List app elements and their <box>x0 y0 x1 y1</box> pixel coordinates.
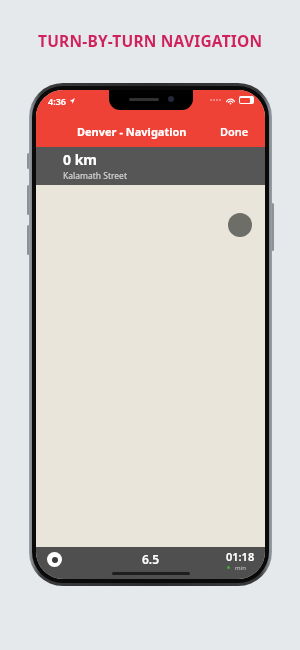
button[interactable]: Done <box>216 122 253 141</box>
staticText: Denver - Navigation <box>77 124 187 139</box>
button[interactable]: 0 km <box>36 147 265 185</box>
button[interactable]: Current location <box>228 213 252 237</box>
staticText: 0 km <box>63 150 97 169</box>
staticText: Done <box>220 124 249 139</box>
staticText: TURN-BY-TURN NAVIGATION <box>38 30 263 51</box>
staticText: Kalamath Street <box>63 170 127 182</box>
button[interactable]: Denver - Navigation <box>73 122 191 141</box>
staticText: 4:36 <box>48 95 66 107</box>
staticText: 01:18 <box>226 549 255 564</box>
staticText: min <box>235 564 246 572</box>
staticText: 6.5 <box>142 551 160 567</box>
button[interactable]: Stop recording <box>47 552 62 567</box>
